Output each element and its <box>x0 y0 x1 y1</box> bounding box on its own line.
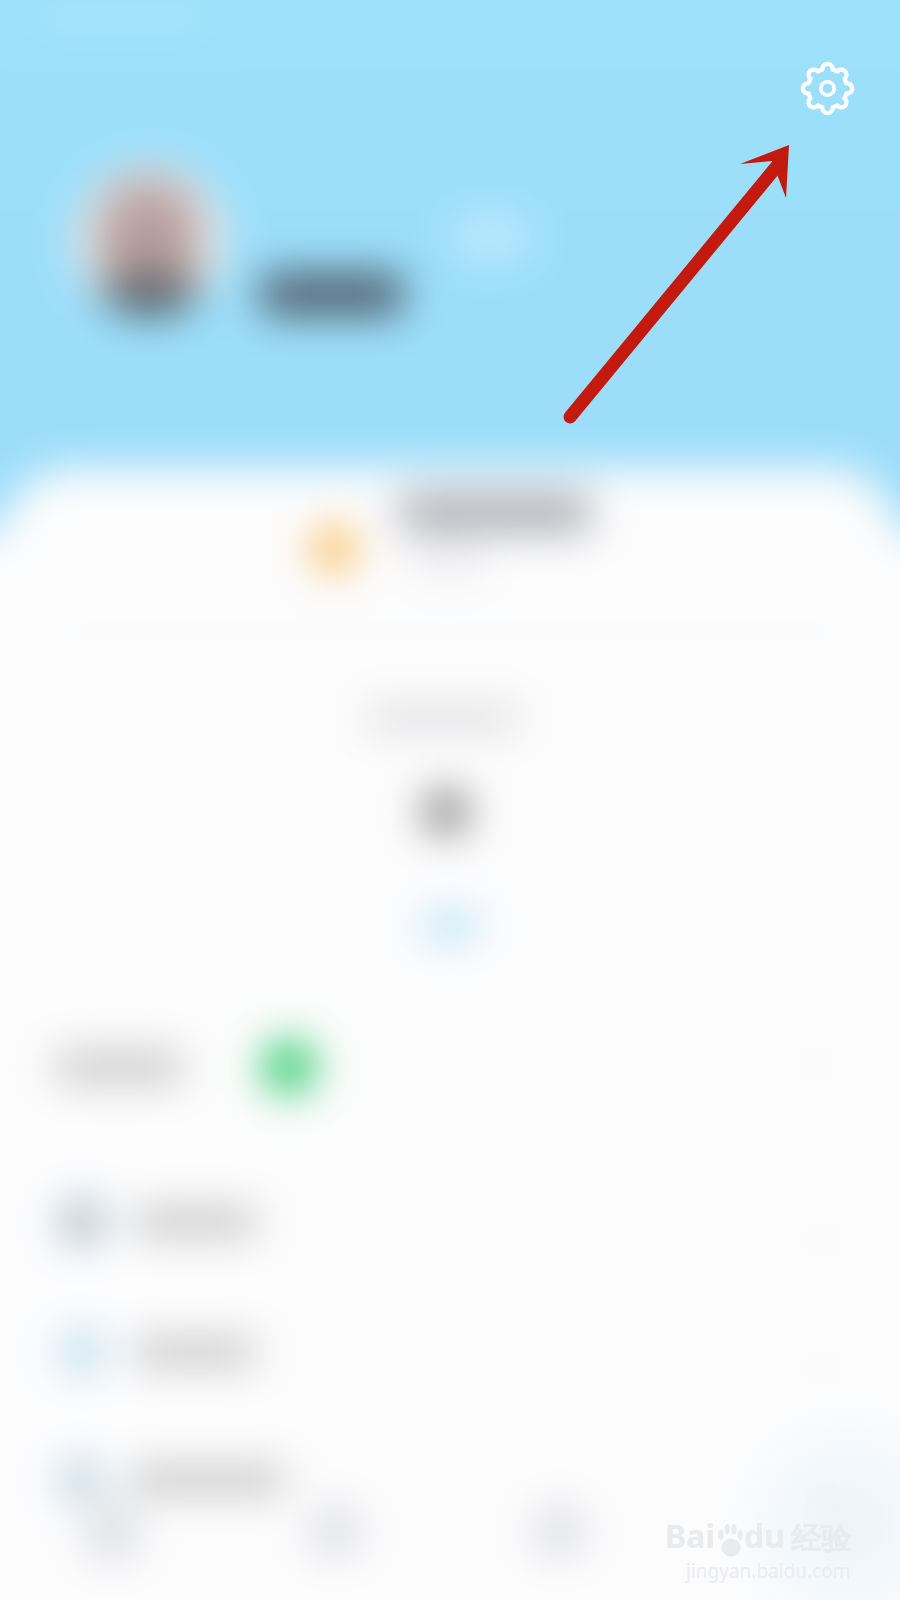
button[interactable]: Settings <box>796 57 858 119</box>
button[interactable]: Home <box>83 1503 141 1561</box>
button[interactable] <box>0 1307 900 1397</box>
button[interactable] <box>0 1000 900 1136</box>
button[interactable] <box>261 272 403 316</box>
button[interactable] <box>0 472 900 622</box>
staticText: Bai <box>665 1514 716 1558</box>
button[interactable]: Profile photo <box>75 165 225 315</box>
staticText: du <box>744 1514 786 1558</box>
staticText: 经验 <box>791 1520 851 1558</box>
staticText: jingyan.baidu.com <box>686 1558 851 1584</box>
button[interactable] <box>0 1177 900 1267</box>
button[interactable] <box>0 1435 900 1525</box>
